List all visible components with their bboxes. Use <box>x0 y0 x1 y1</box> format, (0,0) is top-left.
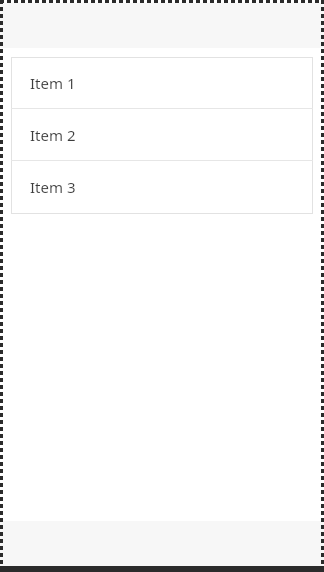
button[interactable]: Item 2 <box>11 109 313 161</box>
staticText: Item 2 <box>30 125 76 145</box>
button[interactable]: Item 3 <box>11 161 313 213</box>
staticText: Item 1 <box>30 73 76 93</box>
staticText: Item 3 <box>30 177 76 197</box>
button[interactable]: Item 1 <box>11 57 313 109</box>
